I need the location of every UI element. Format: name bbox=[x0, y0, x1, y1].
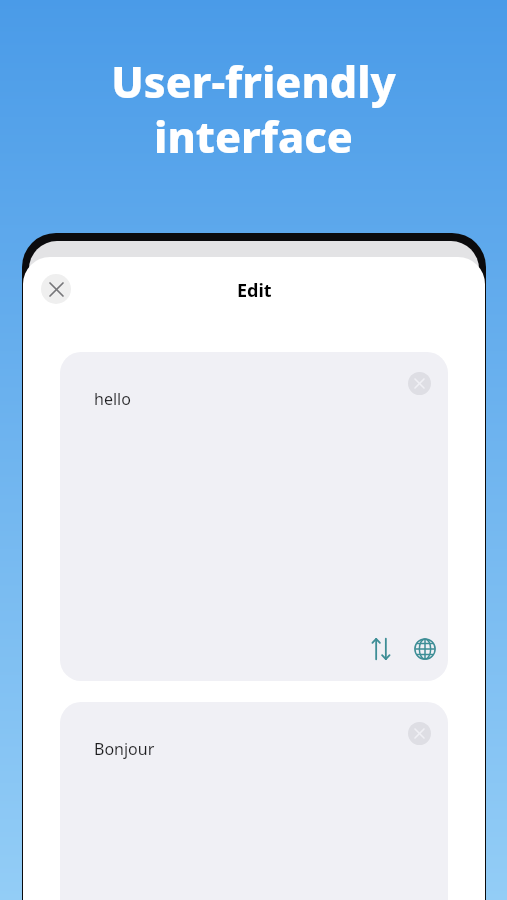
staticText: hello bbox=[94, 388, 131, 410]
button[interactable]: Delete bbox=[408, 372, 431, 395]
button[interactable]: Swap languages bbox=[365, 633, 397, 665]
button[interactable]: Change language bbox=[409, 633, 441, 665]
button[interactable]: Delete bbox=[408, 722, 431, 745]
button[interactable]: Bonjour bbox=[60, 702, 448, 900]
staticText: Bonjour bbox=[94, 738, 155, 760]
staticText: Edit bbox=[237, 278, 272, 303]
button[interactable]: hello bbox=[60, 352, 448, 681]
staticText: User-friendly interface bbox=[30, 52, 477, 177]
button[interactable]: Close bbox=[41, 274, 71, 304]
